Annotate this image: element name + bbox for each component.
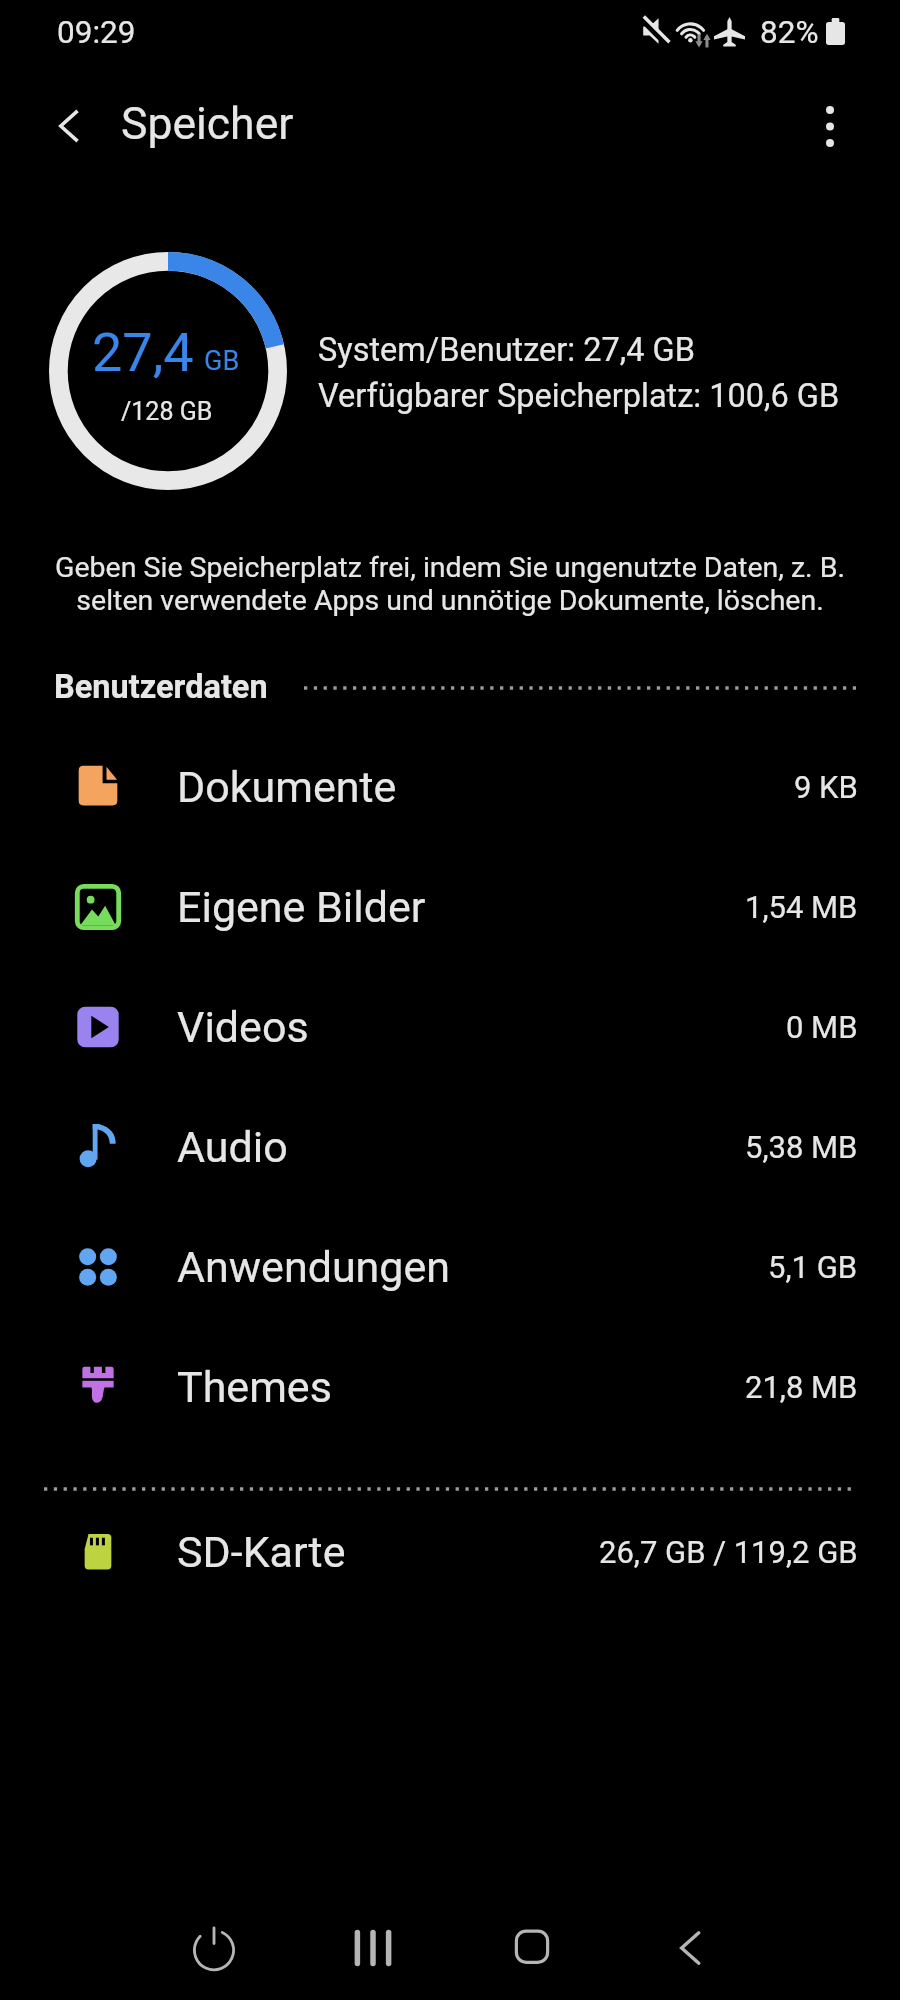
staticText: /128 GB [121,397,213,426]
staticText: 82% [760,14,819,51]
button[interactable]: Letzte Apps [331,1906,415,1990]
staticText: 9 KB [794,769,858,805]
staticText: 09:29 [57,14,136,51]
staticText: 5,38 MB [745,1129,858,1165]
staticText: SD-Karte [177,1527,346,1577]
staticText: Speicher [121,98,294,150]
staticText: Dokumente [177,762,397,812]
staticText: 5,1 GB [768,1249,858,1285]
button[interactable]: Audio [0,1087,900,1207]
staticText: 27,4 [92,321,194,384]
button[interactable]: Weitere Optionen [798,94,862,158]
button[interactable]: Dokumente [0,727,900,847]
staticText: GB [204,345,240,377]
button[interactable]: SD-Karte [0,1492,900,1612]
button[interactable]: Startseite [490,1906,574,1990]
staticText: Eigene Bilder [177,882,426,932]
button[interactable]: Zurück [648,1906,732,1990]
staticText: Benutzerdaten [54,668,268,706]
button[interactable]: Themes [0,1327,900,1447]
button[interactable]: Zurück [38,94,102,158]
staticText: 1,54 MB [745,889,858,925]
staticText: Themes [177,1362,332,1412]
button[interactable]: Ein/Aus [172,1906,256,1990]
button[interactable]: Eigene Bilder [0,847,900,967]
staticText: Geben Sie Speicherplatz frei, indem Sie … [0,551,900,617]
staticText: Videos [177,1002,309,1052]
button[interactable]: Anwendungen [0,1207,900,1327]
staticText: Anwendungen [177,1242,451,1292]
staticText: System/Benutzer: 27,4 GB Verfügbarer Spe… [318,331,840,415]
staticText: 0 MB [786,1009,858,1045]
button[interactable]: Videos [0,967,900,1087]
staticText: 21,8 MB [745,1369,858,1405]
staticText: Audio [177,1122,288,1172]
staticText: 26,7 GB / 119,2 GB [599,1534,858,1570]
